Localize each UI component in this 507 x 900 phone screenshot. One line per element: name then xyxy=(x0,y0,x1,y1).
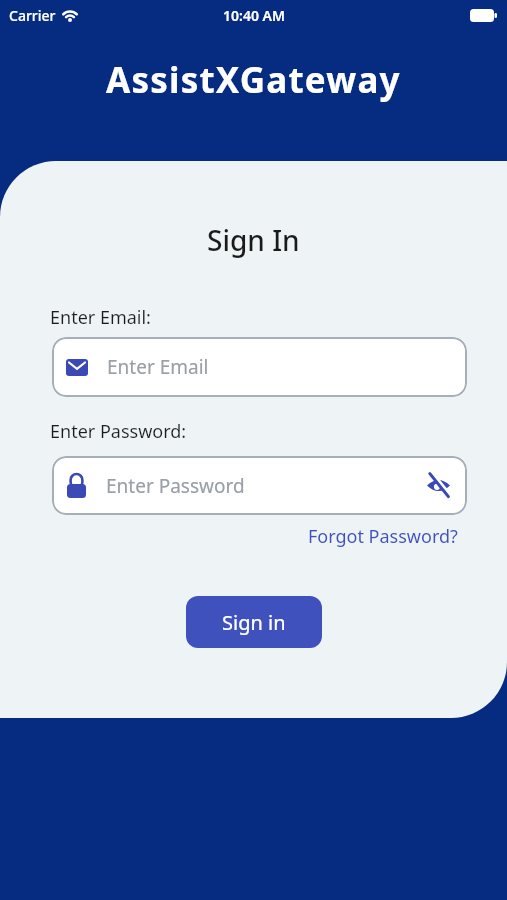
staticText: Enter Email: xyxy=(50,305,151,330)
staticText: Enter Password xyxy=(106,473,245,499)
button[interactable]: Enter Password xyxy=(52,456,467,515)
staticText: Sign in xyxy=(222,609,286,636)
button[interactable]: Forgot Password? xyxy=(308,524,458,549)
staticText: Sign In xyxy=(207,221,300,259)
staticText: AssistXGateway xyxy=(106,56,401,104)
button[interactable]: Sign in xyxy=(186,596,322,648)
button[interactable]: Enter Email xyxy=(52,337,467,397)
staticText: Enter Email xyxy=(107,354,209,380)
staticText: 10:40 AM xyxy=(223,6,285,25)
staticText: Enter Password: xyxy=(50,419,187,444)
button[interactable] xyxy=(426,473,451,498)
staticText: Carrier xyxy=(9,6,56,25)
